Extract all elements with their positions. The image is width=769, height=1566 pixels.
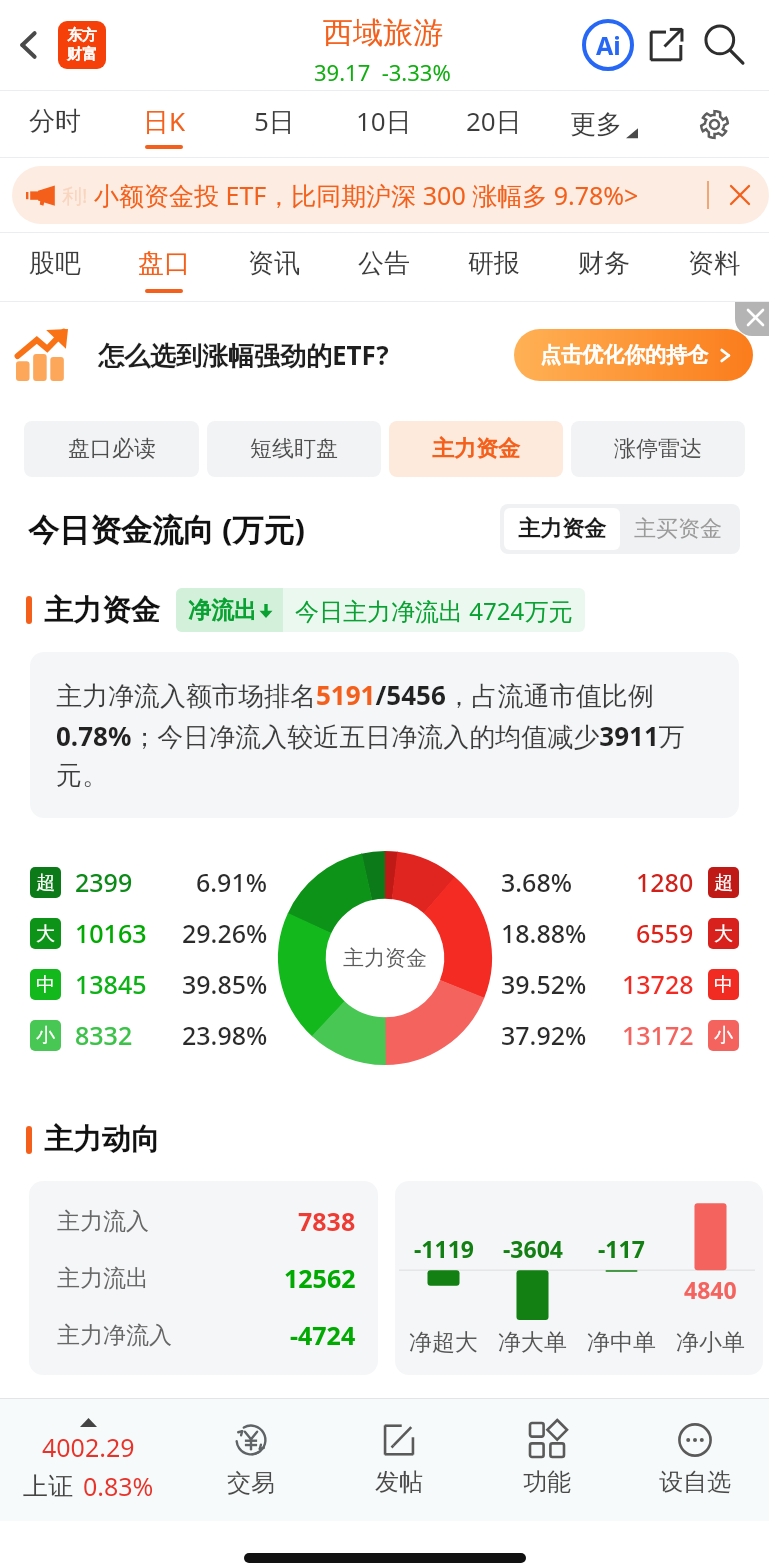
button[interactable]: AI assistant <box>577 14 639 76</box>
button[interactable]: East Money home <box>58 21 106 69</box>
staticText: 4002.29 <box>42 1430 135 1464</box>
staticText: 39.17 -3.33% <box>314 57 451 87</box>
button[interactable]: Settings <box>659 91 769 157</box>
staticText: 更多 <box>570 108 622 141</box>
staticText: 3.68% <box>501 865 573 899</box>
button[interactable]: 资讯 <box>219 233 329 301</box>
staticText: Ai <box>596 28 621 62</box>
staticText: -1119 <box>414 1233 474 1264</box>
staticText: 净中单 <box>587 1328 656 1357</box>
staticText: 日K <box>143 103 186 139</box>
button[interactable]: Close banner <box>727 182 753 208</box>
staticText: 主力动向 <box>44 1121 160 1158</box>
button[interactable]: 设自选 <box>621 1399 769 1521</box>
staticText: 5日 <box>254 103 295 139</box>
staticText: 净大单 <box>498 1328 567 1357</box>
staticText: 涨停雷达 <box>614 435 702 463</box>
staticText: 资讯 <box>248 247 300 280</box>
staticText: 盘口 <box>138 247 190 280</box>
button[interactable]: 主力资金 <box>389 421 563 477</box>
staticText: 小 <box>714 1024 733 1048</box>
button[interactable]: 主买资金 <box>620 508 736 550</box>
button[interactable]: 股吧 <box>0 233 109 301</box>
staticText: 分时 <box>29 105 81 138</box>
staticText: 小 <box>36 1024 55 1048</box>
staticText: 利! <box>62 182 88 209</box>
button[interactable]: 盘口必读 <box>24 421 199 477</box>
staticText: 主力净流入 <box>57 1321 172 1350</box>
staticText: 主力净流入额市场排名5191/5456，占流通市值比例0.78%；今日净流入较近… <box>56 677 715 792</box>
staticText: 29.26% <box>182 916 268 950</box>
staticText: 资料 <box>688 247 740 280</box>
staticText: 今日资金流向 (万元) <box>28 508 306 550</box>
button[interactable]: 财务 <box>549 233 659 301</box>
button[interactable]: 资料 <box>659 233 769 301</box>
button[interactable]: 公告 <box>329 233 439 301</box>
staticText: 0.83% <box>83 1469 154 1503</box>
staticText: 财务 <box>578 247 630 280</box>
staticText: 财富 <box>67 45 97 64</box>
button[interactable]: Close ad <box>735 302 769 336</box>
staticText: 大 <box>714 922 733 946</box>
button[interactable]: 短线盯盘 <box>207 421 381 477</box>
button[interactable]: 4002.29 <box>0 1399 177 1521</box>
staticText: 13728 <box>622 967 694 1001</box>
staticText: 西域旅游 <box>323 14 443 52</box>
staticText: 上证 <box>23 1471 73 1502</box>
staticText: 13172 <box>622 1018 694 1052</box>
button[interactable]: 功能 <box>473 1399 621 1521</box>
staticText: 8332 <box>75 1018 133 1052</box>
staticText: 超 <box>714 871 733 895</box>
staticText: 37.92% <box>501 1018 587 1052</box>
staticText: -4724 <box>290 1318 356 1352</box>
staticText: 2399 <box>75 865 133 899</box>
staticText: 13845 <box>75 967 147 1001</box>
button[interactable]: 交易 <box>177 1399 325 1521</box>
staticText: 中 <box>714 973 733 997</box>
button[interactable]: 利! <box>12 166 769 224</box>
button[interactable]: 涨停雷达 <box>571 421 745 477</box>
staticText: -3604 <box>503 1233 563 1264</box>
staticText: 净小单 <box>676 1328 745 1357</box>
button[interactable]: 5日 <box>219 91 329 157</box>
staticText: 10日 <box>356 103 412 139</box>
button[interactable]: 20日 <box>439 91 549 157</box>
staticText: 主力资金 <box>518 515 606 543</box>
button[interactable]: 盘口 <box>109 233 219 301</box>
staticText: 20日 <box>466 103 522 139</box>
staticText: 主力流出 <box>57 1264 149 1293</box>
staticText: 小额资金投 ETF，比同期沪深 300 涨幅多 9.78%> <box>94 178 639 212</box>
button[interactable]: 发帖 <box>325 1399 473 1521</box>
button[interactable]: 主力资金 <box>504 508 620 550</box>
staticText: 12562 <box>284 1261 356 1295</box>
staticText: 23.98% <box>182 1018 268 1052</box>
staticText: 净超大 <box>409 1328 478 1357</box>
staticText: -117 <box>598 1233 645 1264</box>
staticText: 短线盯盘 <box>250 435 338 463</box>
button[interactable]: 怎么选到涨幅强劲的ETF? <box>16 302 753 408</box>
staticText: 公告 <box>358 247 410 280</box>
button[interactable]: Back <box>0 0 58 90</box>
staticText: 盘口必读 <box>68 435 156 463</box>
button[interactable]: Share <box>639 18 693 72</box>
button[interactable]: 10日 <box>329 91 439 157</box>
staticText: 交易 <box>227 1468 275 1498</box>
button[interactable]: 分时 <box>0 91 109 157</box>
staticText: 18.88% <box>501 916 587 950</box>
button[interactable]: 研报 <box>439 233 549 301</box>
button[interactable]: 更多 <box>549 91 659 157</box>
staticText: 股吧 <box>29 247 81 280</box>
staticText: 今日主力净流出 4724万元 <box>295 594 573 627</box>
button[interactable]: 日K <box>109 91 219 157</box>
staticText: 主力资金 <box>343 945 427 971</box>
staticText: 7838 <box>298 1204 356 1238</box>
staticText: 6559 <box>636 916 694 950</box>
button[interactable]: Search <box>693 14 755 76</box>
button[interactable]: 点击优化你的持仓 <box>514 329 753 381</box>
staticText: 功能 <box>523 1467 571 1497</box>
staticText: 主买资金 <box>634 515 722 543</box>
staticText: 主力流入 <box>57 1207 149 1236</box>
staticText: 39.85% <box>182 967 268 1001</box>
staticText: 10163 <box>75 916 147 950</box>
staticText: 中 <box>36 973 55 997</box>
